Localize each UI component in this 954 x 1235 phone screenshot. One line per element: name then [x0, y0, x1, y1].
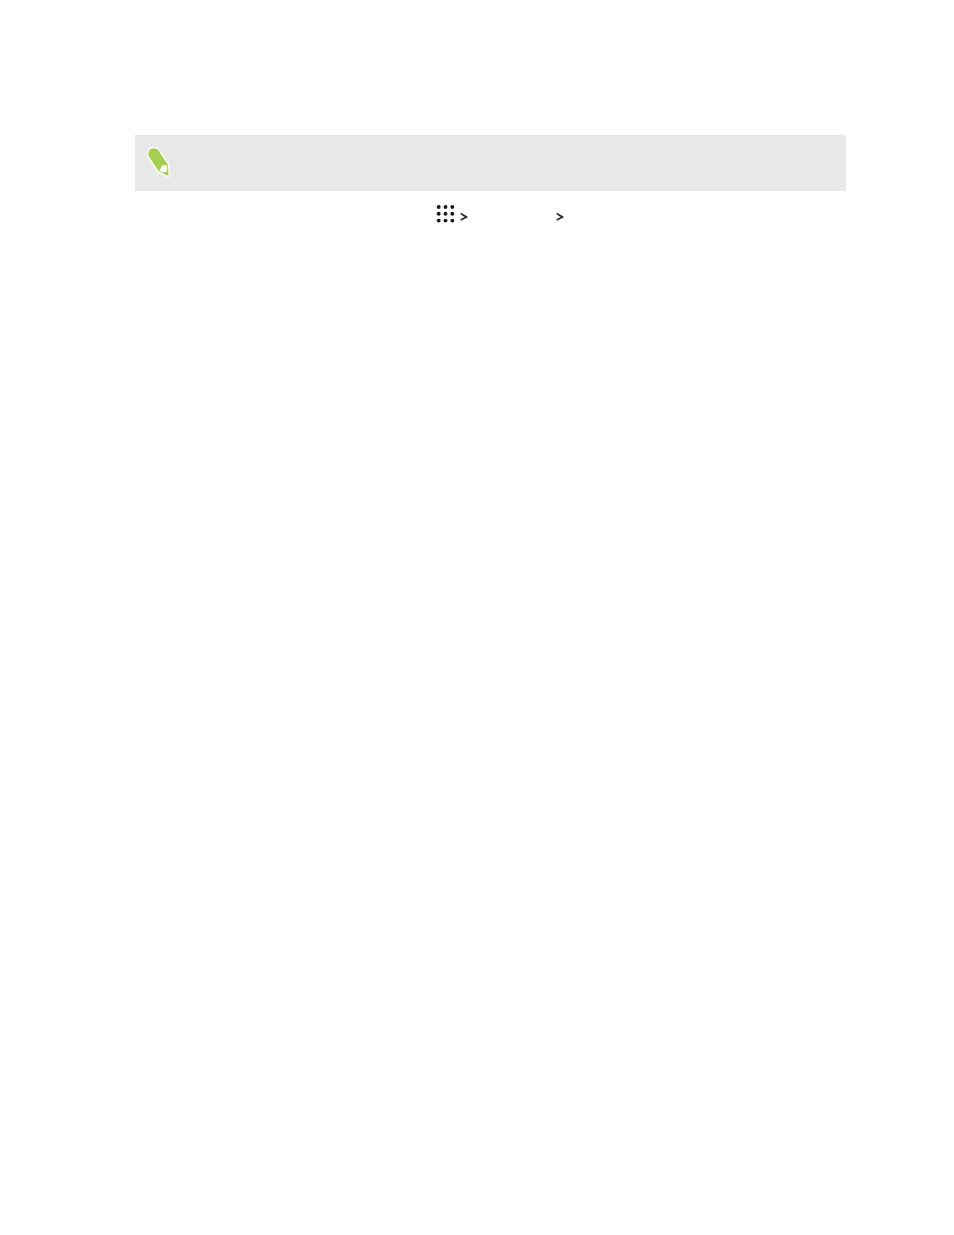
button[interactable]: Tip [135, 135, 846, 191]
button[interactable]: All apps [432, 200, 458, 226]
button[interactable]: Next step [552, 209, 568, 225]
button[interactable]: Next step [456, 209, 472, 225]
